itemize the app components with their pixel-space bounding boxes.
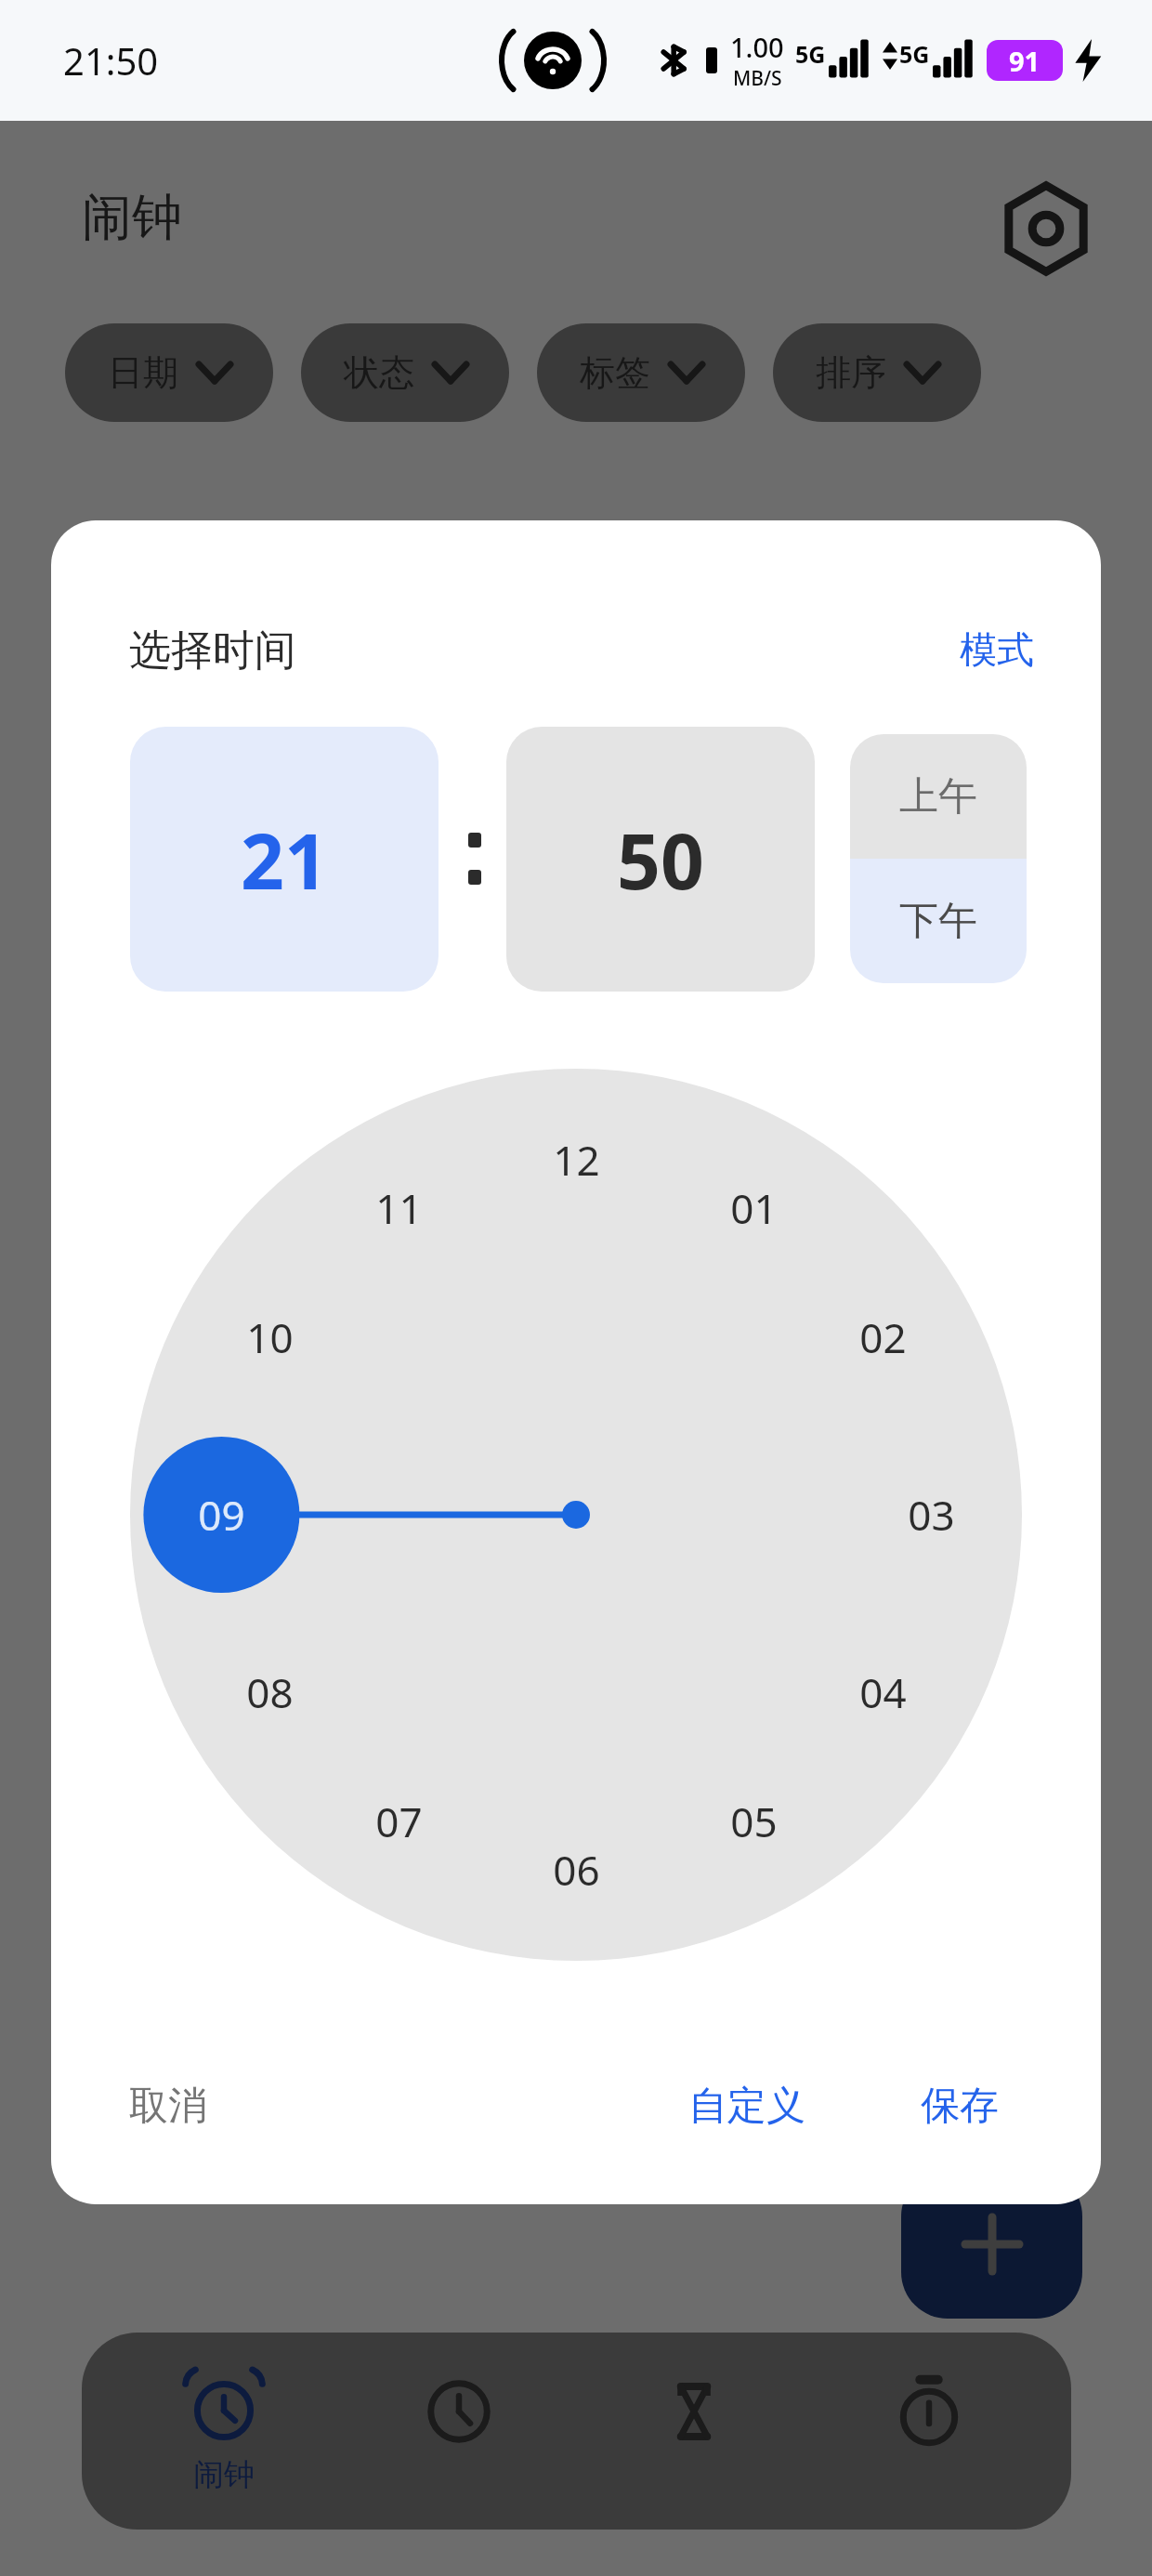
staticText: 状态 (344, 350, 414, 395)
staticText: 日期 (108, 350, 178, 395)
button[interactable]: Add alarm (901, 2170, 1082, 2319)
button[interactable]: 50 (506, 727, 815, 992)
staticText: 保存 (921, 2082, 999, 2131)
button[interactable]: Settings (992, 175, 1100, 283)
staticText: MB/S (733, 65, 782, 92)
button[interactable]: 排序 (773, 323, 981, 422)
staticText: 03 (908, 1487, 955, 1543)
button[interactable]: 状态 (301, 323, 509, 422)
staticText: 标签 (580, 350, 650, 395)
staticText: 上午 (899, 772, 977, 821)
button[interactable]: 上午 (850, 734, 1027, 859)
staticText: 闹钟 (193, 2455, 255, 2494)
staticText: 12 (553, 1132, 600, 1188)
button[interactable]: 取消 (105, 2063, 231, 2149)
staticText: 选择时间 (129, 624, 296, 677)
button[interactable]: Tab (366, 2333, 552, 2530)
button[interactable]: 日期 (65, 323, 273, 422)
staticText: 模式 (960, 626, 1034, 673)
staticText: 排序 (816, 350, 886, 395)
staticText: 21 (241, 808, 328, 912)
button[interactable]: 标签 (537, 323, 745, 422)
staticText: 02 (859, 1309, 907, 1365)
staticText: 21:50 (63, 35, 159, 85)
button[interactable]: 保存 (897, 2063, 1023, 2149)
staticText: 09 (198, 1487, 245, 1543)
staticText: 5G (899, 38, 930, 70)
staticText: 50 (617, 808, 704, 912)
button[interactable]: 模式 (943, 613, 1051, 686)
staticText: 07 (375, 1794, 423, 1849)
staticText: 闹钟 (82, 186, 182, 249)
staticText: 01 (730, 1180, 778, 1236)
button[interactable]: Clock dial (130, 1069, 1022, 1961)
staticText: 06 (553, 1842, 600, 1898)
staticText: 11 (375, 1180, 423, 1236)
staticText: 05 (730, 1794, 778, 1849)
staticText: 91 (1009, 43, 1041, 79)
button[interactable]: 21 (130, 727, 439, 992)
staticText: 04 (859, 1664, 907, 1720)
button[interactable]: Tab (836, 2333, 1022, 2530)
button[interactable]: Alarm tab (131, 2333, 317, 2530)
staticText: 下午 (899, 897, 977, 946)
staticText: 取消 (129, 2082, 207, 2131)
button[interactable]: 下午 (850, 859, 1027, 983)
button[interactable]: 自定义 (664, 2063, 830, 2149)
staticText: 08 (246, 1664, 294, 1720)
button[interactable]: Tab (601, 2333, 787, 2530)
staticText: 1.00 (730, 29, 784, 65)
staticText: 自定义 (688, 2082, 805, 2131)
staticText: 10 (246, 1309, 294, 1365)
staticText: 5G (795, 38, 826, 70)
